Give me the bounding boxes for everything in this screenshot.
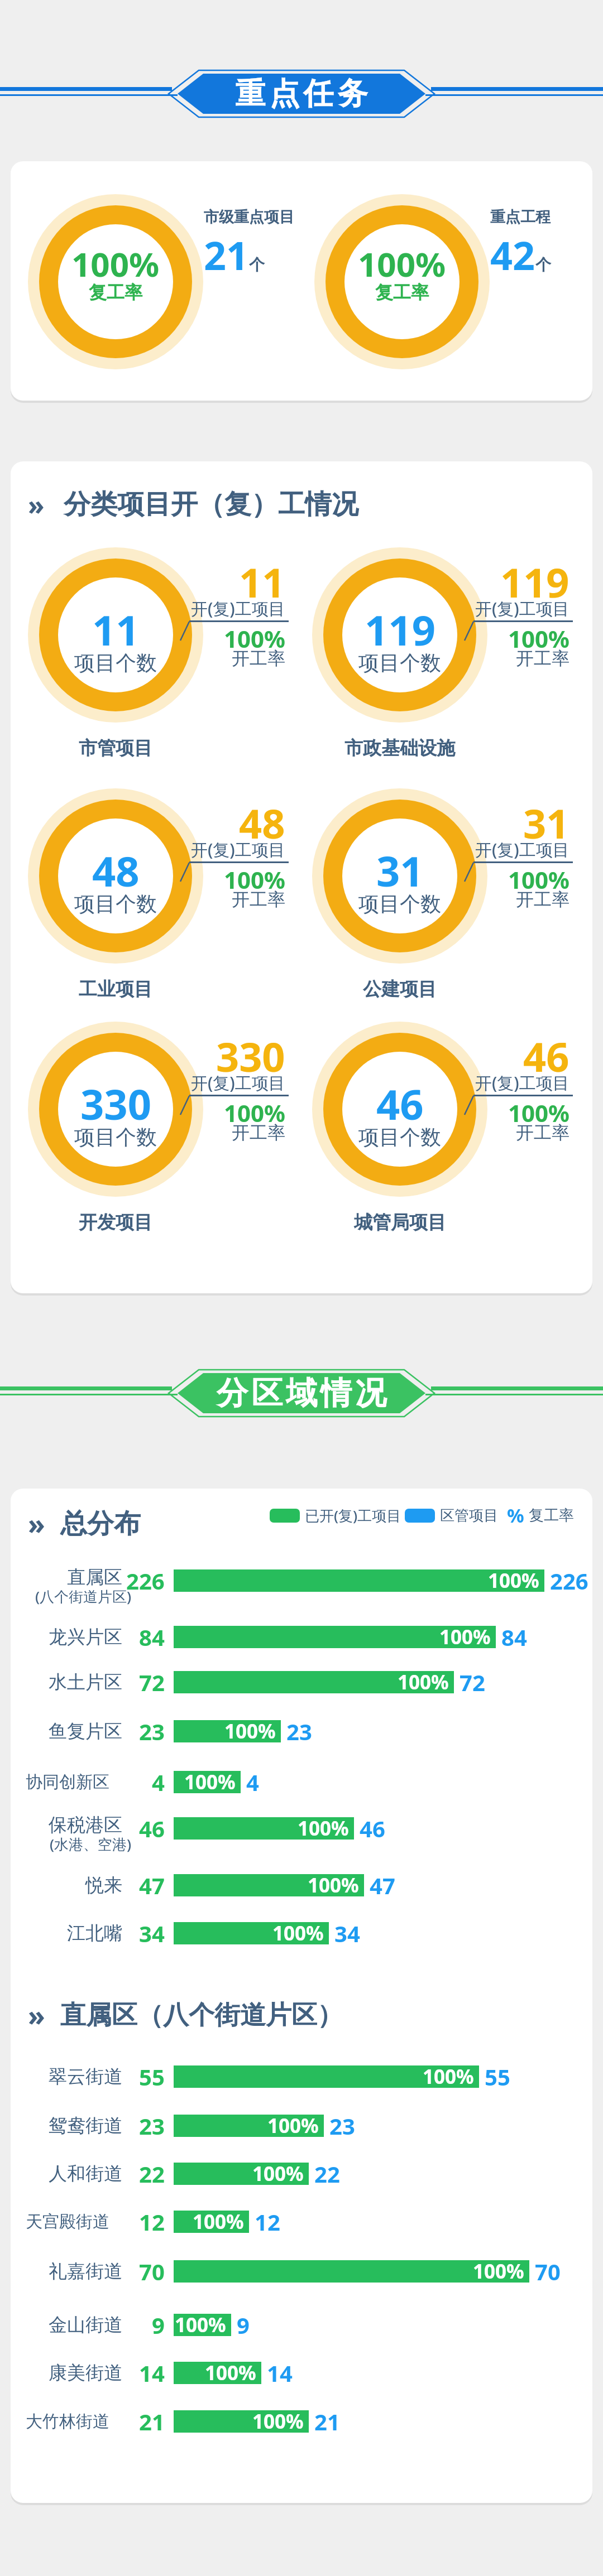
staticText: 城管局项目 (354, 1211, 446, 1234)
staticText: 4 (246, 1767, 259, 1797)
staticText: » (28, 1505, 45, 1543)
staticText: 14 (139, 2358, 165, 2388)
staticText: 46 (376, 1076, 424, 1132)
staticText: 个 (249, 255, 265, 275)
staticText: 开(复)工项目 (475, 597, 569, 620)
staticText: 100% (272, 1920, 324, 1947)
staticText: 21 (204, 228, 249, 281)
staticText: 23 (329, 2111, 355, 2141)
staticText: 31 (523, 796, 569, 850)
staticText: 34 (139, 1918, 165, 1948)
staticText: 47 (370, 1870, 395, 1900)
staticText: 226 (550, 1566, 588, 1596)
staticText: 康美街道 (49, 2361, 122, 2385)
staticText: 100% (508, 623, 569, 654)
staticText: 100% (298, 1815, 349, 1842)
staticText: 70 (535, 2256, 561, 2286)
staticText: 悦来 (85, 1874, 122, 1897)
staticText: 22 (314, 2159, 340, 2189)
staticText: 100% (205, 2360, 256, 2386)
staticText: 22 (139, 2159, 165, 2189)
staticText: 48 (92, 842, 140, 899)
staticText: 119 (500, 555, 569, 609)
staticText: 9 (152, 2310, 165, 2340)
staticText: 23 (139, 1716, 165, 1746)
staticText: 开发项目 (79, 1211, 152, 1234)
staticText: 水土片区 (49, 1670, 122, 1694)
staticText: 开工率 (516, 647, 569, 670)
staticText: 100% (224, 864, 285, 895)
staticText: 100% (508, 1097, 569, 1129)
staticText: 天宫殿街道 (26, 2211, 109, 2232)
staticText: 开(复)工项目 (191, 838, 285, 861)
staticText: % (507, 1503, 524, 1528)
staticText: 市政基础设施 (344, 736, 455, 760)
staticText: 47 (139, 1870, 165, 1900)
staticText: 龙兴片区 (49, 1625, 122, 1649)
staticText: 11 (92, 601, 140, 658)
staticText: 55 (139, 2062, 165, 2092)
staticText: 开工率 (516, 888, 569, 911)
staticText: 42 (490, 228, 535, 281)
staticText: 已开(复)工项目 (305, 1505, 401, 1525)
staticText: 项目个数 (358, 1124, 441, 1150)
staticText: 项目个数 (74, 650, 157, 676)
staticText: 分类项目开（复）工情况 (64, 488, 358, 521)
staticText: 4 (152, 1767, 165, 1797)
staticText: 100% (423, 2063, 474, 2090)
staticText: 100% (308, 1872, 359, 1899)
staticText: 市级重点项目 (204, 208, 294, 227)
staticText: 23 (286, 1716, 312, 1746)
staticText: 48 (239, 796, 285, 850)
staticText: 23 (139, 2111, 165, 2141)
staticText: 21 (314, 2406, 340, 2437)
staticText: 100% (224, 1097, 285, 1129)
staticText: 开工率 (232, 1121, 285, 1144)
staticText: 开(复)工项目 (475, 1071, 569, 1094)
staticText: 100% (508, 864, 569, 895)
staticText: (水港、空港) (50, 1834, 132, 1854)
staticText: 12 (255, 2207, 280, 2237)
staticText: 330 (216, 1029, 285, 1084)
staticText: 协同创新区 (26, 1771, 109, 1793)
staticText: 100% (358, 241, 446, 287)
staticText: 100% (252, 2160, 304, 2187)
staticText: 公建项目 (363, 978, 437, 1001)
staticText: 项目个数 (358, 650, 441, 676)
staticText: 100% (488, 1567, 539, 1594)
staticText: (八个街道片区) (35, 1586, 132, 1606)
staticText: 46 (360, 1813, 385, 1843)
staticText: 100% (193, 2208, 244, 2235)
staticText: 金山街道 (49, 2313, 122, 2337)
staticText: 人和街道 (49, 2162, 122, 2185)
staticText: 工业项目 (79, 978, 152, 1001)
staticText: 100% (175, 2312, 226, 2338)
staticText: 11 (239, 555, 285, 609)
staticText: 100% (224, 623, 285, 654)
staticText: 礼嘉街道 (49, 2260, 122, 2283)
staticText: 46 (523, 1029, 569, 1084)
staticText: 100% (71, 241, 160, 287)
staticText: 330 (80, 1076, 151, 1132)
staticText: 84 (139, 1622, 165, 1652)
staticText: 100% (439, 1624, 491, 1650)
staticText: 100% (267, 2112, 319, 2139)
staticText: 江北嘴 (67, 1922, 122, 1945)
staticText: 市管项目 (79, 736, 152, 760)
staticText: 100% (398, 1669, 449, 1696)
staticText: 复工率 (89, 281, 142, 304)
staticText: 直属区 (67, 1566, 122, 1589)
staticText: 100% (252, 2408, 304, 2435)
staticText: 226 (126, 1566, 165, 1596)
staticText: 鸳鸯街道 (49, 2114, 122, 2137)
staticText: 开(复)工项目 (475, 838, 569, 861)
staticText: » (28, 1996, 45, 2034)
staticText: 复工率 (529, 1506, 574, 1525)
staticText: 100% (184, 1769, 236, 1795)
staticText: 重点工程 (490, 208, 551, 227)
staticText: 31 (376, 842, 424, 899)
staticText: 开工率 (232, 888, 285, 911)
staticText: 14 (267, 2358, 293, 2388)
staticText: 84 (501, 1622, 527, 1652)
staticText: 119 (365, 601, 435, 658)
